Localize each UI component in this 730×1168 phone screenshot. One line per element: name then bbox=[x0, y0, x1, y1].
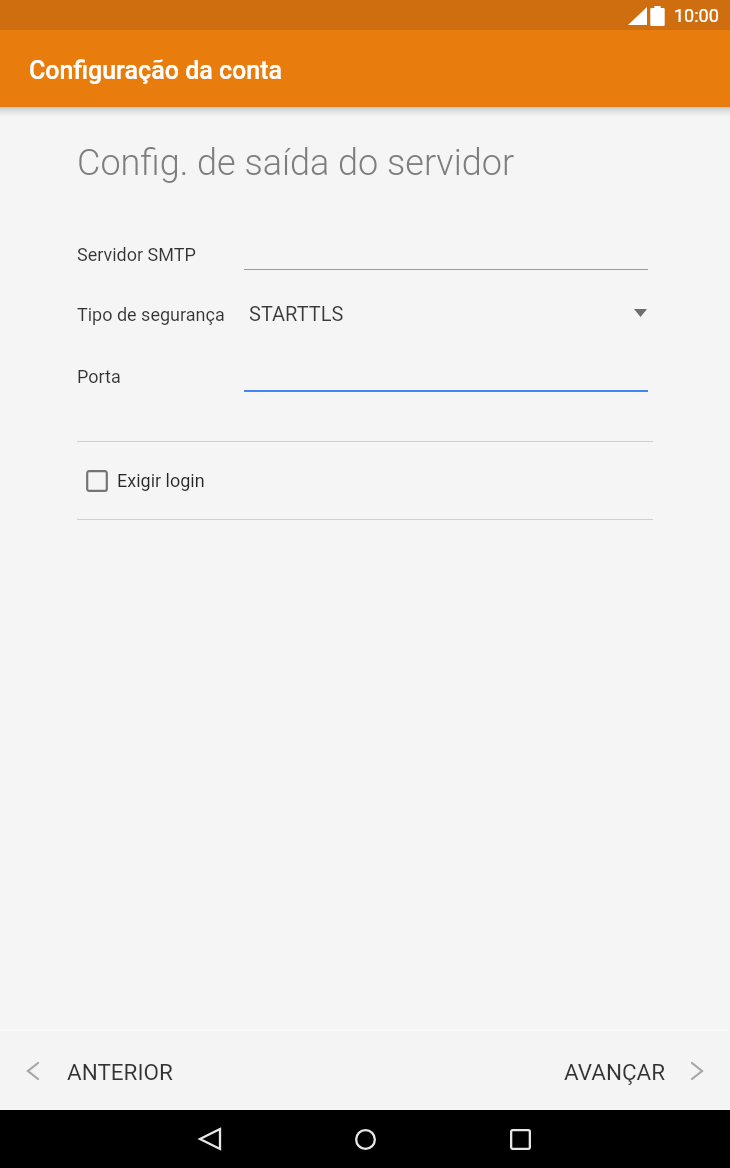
staticText: Exigir login bbox=[117, 470, 205, 491]
button[interactable]: Home bbox=[335, 1110, 395, 1168]
staticText: Servidor SMTP bbox=[77, 244, 196, 265]
button[interactable]: AVANÇAR bbox=[564, 1031, 730, 1110]
button[interactable]: Back bbox=[180, 1110, 240, 1168]
staticText: Configuração da conta bbox=[29, 56, 283, 85]
button[interactable]: Recents bbox=[490, 1110, 550, 1168]
staticText: ANTERIOR bbox=[67, 1059, 173, 1085]
button[interactable]: Servidor SMTP bbox=[77, 233, 648, 277]
staticText: Porta bbox=[77, 366, 121, 387]
staticText: STARTTLS bbox=[249, 302, 344, 325]
button[interactable]: ANTERIOR bbox=[0, 1031, 173, 1110]
staticText: 10:00 bbox=[674, 5, 719, 26]
staticText: Config. de saída do servidor bbox=[77, 142, 515, 184]
button[interactable]: Exigir login bbox=[77, 442, 653, 519]
staticText: AVANÇAR bbox=[564, 1059, 666, 1085]
button[interactable]: Tipo de segurança bbox=[77, 293, 648, 337]
staticText: Tipo de segurança bbox=[77, 304, 225, 325]
button[interactable]: Porta bbox=[77, 355, 648, 399]
